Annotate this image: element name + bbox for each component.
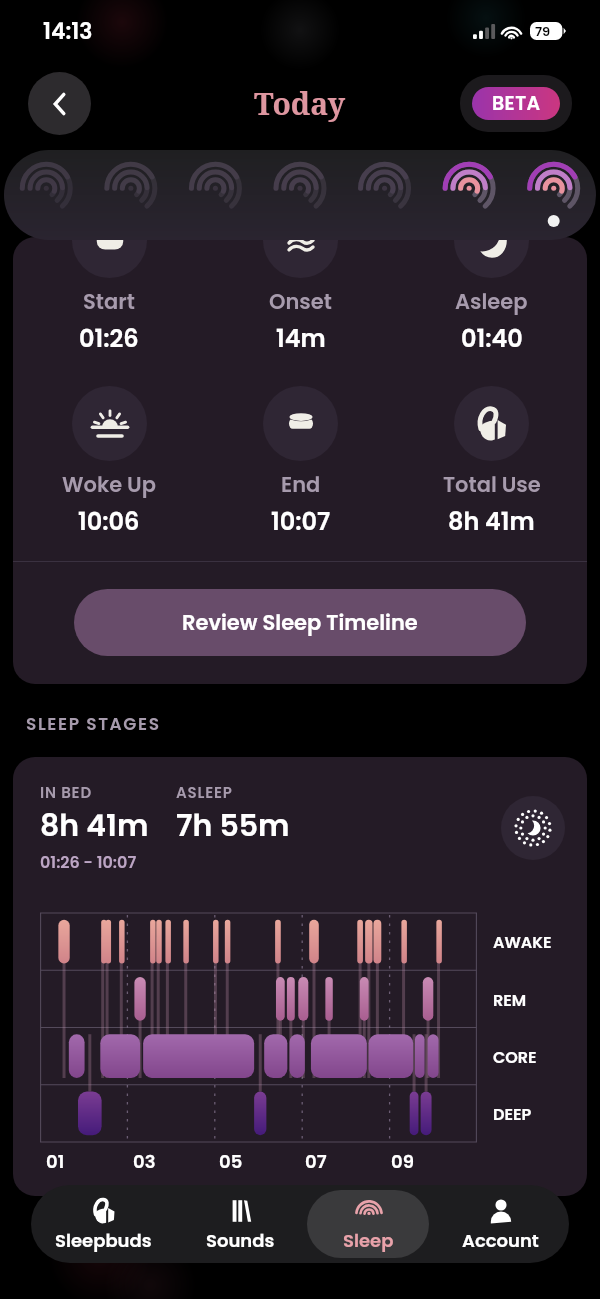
staticText: REM [493, 989, 527, 1011]
button[interactable]: Sleep details [501, 796, 565, 860]
staticText: ASLEEP [176, 782, 233, 803]
staticText: 09 [391, 1149, 414, 1174]
staticText: DEEP [493, 1103, 532, 1125]
staticText: Today [254, 83, 346, 124]
staticText: Total Use [443, 470, 541, 499]
staticText: Review Sleep Timeline [182, 608, 418, 637]
button[interactable]: Back [28, 72, 91, 135]
staticText: 10:06 [78, 505, 140, 539]
staticText: 07 [305, 1149, 327, 1174]
button[interactable]: Account [435, 1190, 566, 1258]
button[interactable]: Sounds [179, 1190, 301, 1258]
button[interactable]: Sleepbuds [34, 1190, 173, 1258]
staticText: 03 [133, 1149, 156, 1174]
staticText: AWAKE [493, 931, 552, 953]
staticText: BETA [492, 90, 541, 117]
staticText: 10:07 [271, 505, 331, 539]
staticText: Sounds [206, 1228, 275, 1253]
staticText: 05 [219, 1149, 243, 1174]
staticText: 01:26 [79, 322, 139, 356]
staticText: Account [462, 1228, 539, 1253]
staticText: 01 [46, 1149, 65, 1174]
staticText: 14:13 [43, 16, 93, 47]
staticText: Sleep [343, 1228, 394, 1253]
staticText: Asleep [455, 287, 528, 316]
staticText: 01:26 - 10:07 [40, 851, 137, 873]
button[interactable]: BETA [460, 75, 572, 132]
staticText: End [281, 470, 321, 499]
button[interactable]: Sleep [307, 1190, 429, 1258]
staticText: Start [83, 287, 135, 316]
staticText: SLEEP STAGES [26, 712, 161, 736]
staticText: Onset [269, 287, 332, 316]
staticText: 79 [535, 22, 551, 40]
staticText: Woke Up [62, 470, 156, 499]
staticText: CORE [493, 1046, 537, 1068]
staticText: 8h 41m [448, 505, 535, 539]
staticText: IN BED [40, 782, 92, 803]
staticText: Sleepbuds [55, 1228, 152, 1253]
staticText: 8h 41m [40, 805, 149, 847]
staticText: 7h 55m [176, 805, 290, 847]
button[interactable]: Review Sleep Timeline [74, 589, 526, 656]
staticText: 01:40 [461, 322, 523, 356]
button[interactable]: Night selector [4, 150, 596, 240]
staticText: 14m [276, 322, 326, 356]
